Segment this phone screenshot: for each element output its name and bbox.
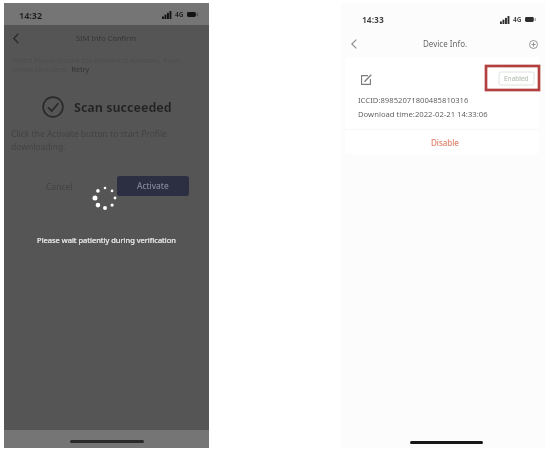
staticText: Please wait patiently during verificatio… [4, 235, 209, 245]
staticText: 4G [513, 15, 522, 24]
staticText: 14:32 [19, 9, 43, 21]
staticText: Activate [137, 180, 169, 192]
staticText: Enabled [504, 74, 529, 83]
button[interactable]: Back [7, 29, 25, 47]
staticText: Device Info. [423, 38, 468, 49]
staticText: Cancel [46, 181, 73, 193]
staticText: 14:33 [362, 14, 384, 26]
button[interactable]: Disable [345, 130, 539, 154]
staticText: Disable [431, 137, 459, 148]
button[interactable]: Rename profile [359, 73, 372, 86]
staticText: Download time:2022-02-21 14:33:06 [358, 109, 488, 119]
staticText: Scan succeeded [74, 99, 172, 116]
button[interactable]: Enabled [499, 72, 534, 85]
button[interactable]: Cancel [41, 177, 78, 197]
staticText: SIM Info Confirm [76, 33, 137, 43]
staticText: 4G [175, 10, 184, 19]
button[interactable]: Back [346, 36, 362, 52]
staticText: Click the Activate button to start Profi… [11, 128, 177, 152]
button[interactable]: Activate [117, 176, 189, 196]
button[interactable]: Add profile [525, 36, 541, 52]
staticText: ICCID:89852071800485810316 [358, 95, 469, 105]
button[interactable]: Retry [65, 65, 91, 76]
